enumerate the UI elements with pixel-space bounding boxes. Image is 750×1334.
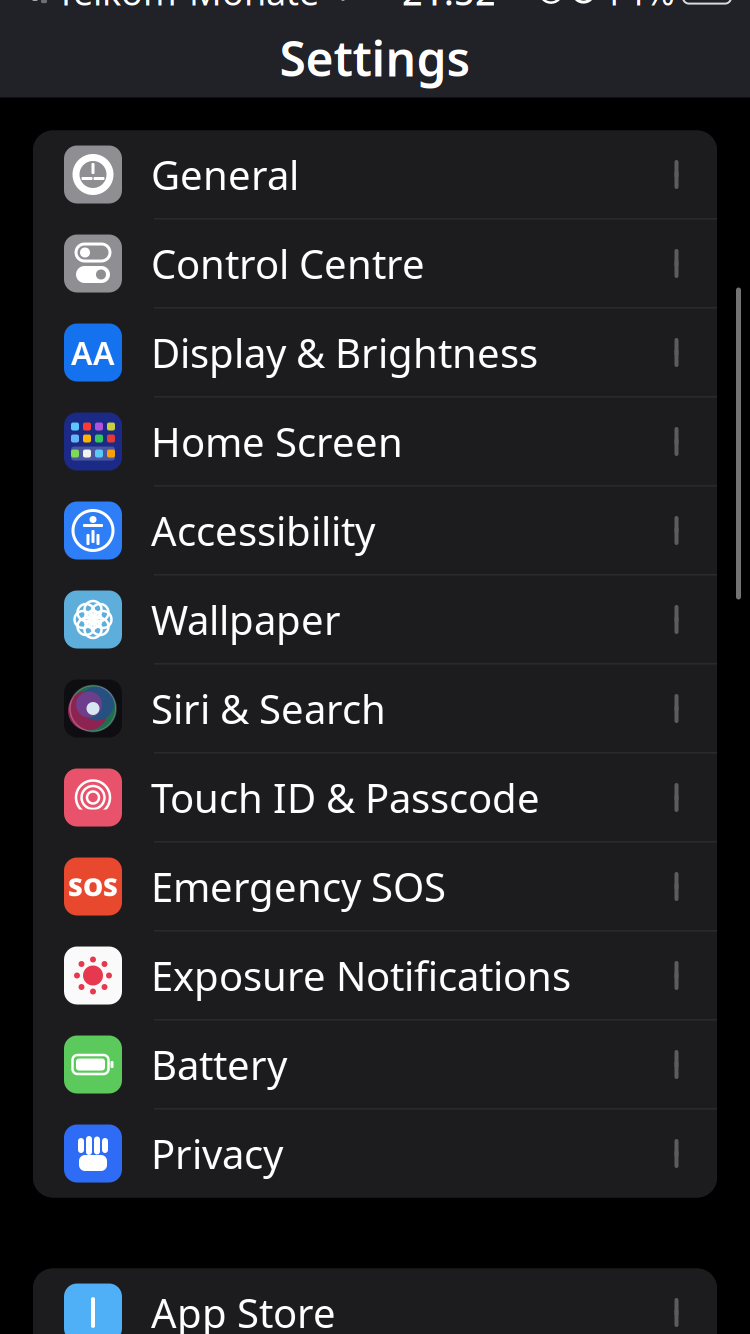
staticText: Touch ID & Passcode	[151, 771, 540, 824]
staticText: General	[151, 148, 299, 201]
button[interactable]: Battery	[33, 1020, 717, 1109]
staticText: Display & Brightness	[151, 326, 538, 379]
staticText: Privacy	[151, 1127, 283, 1180]
staticText: Accessibility	[151, 504, 375, 557]
button[interactable]: Control Centre	[33, 219, 717, 308]
button[interactable]: App Store	[33, 1268, 717, 1334]
button[interactable]: Siri & Search	[33, 664, 717, 753]
staticText: App Store	[151, 1286, 336, 1334]
staticText: 14%	[603, 0, 675, 15]
staticText: Wallpaper	[151, 593, 341, 646]
button[interactable]: SOS	[33, 842, 717, 931]
button[interactable]: Touch ID & Passcode	[33, 753, 717, 842]
staticText: Telkom-Monate	[56, 0, 319, 15]
staticText: Settings	[279, 26, 470, 90]
button[interactable]: AA	[33, 308, 717, 397]
button[interactable]: Privacy	[33, 1109, 717, 1197]
staticText: Siri & Search	[151, 682, 386, 735]
staticText: Emergency SOS	[151, 860, 446, 913]
button[interactable]: General	[33, 130, 717, 219]
staticText: Control Centre	[151, 237, 425, 290]
button[interactable]: Exposure Notifications	[33, 931, 717, 1020]
button[interactable]: Home Screen	[33, 397, 717, 486]
staticText: Exposure Notifications	[151, 949, 571, 1002]
staticText: 21:52	[402, 0, 496, 15]
staticText: Home Screen	[151, 415, 403, 468]
button[interactable]: Accessibility	[33, 486, 717, 575]
staticText: Battery	[151, 1038, 287, 1091]
button[interactable]: Wallpaper	[33, 575, 717, 664]
staticText: SOS	[68, 870, 118, 903]
staticText: AA	[71, 331, 115, 374]
